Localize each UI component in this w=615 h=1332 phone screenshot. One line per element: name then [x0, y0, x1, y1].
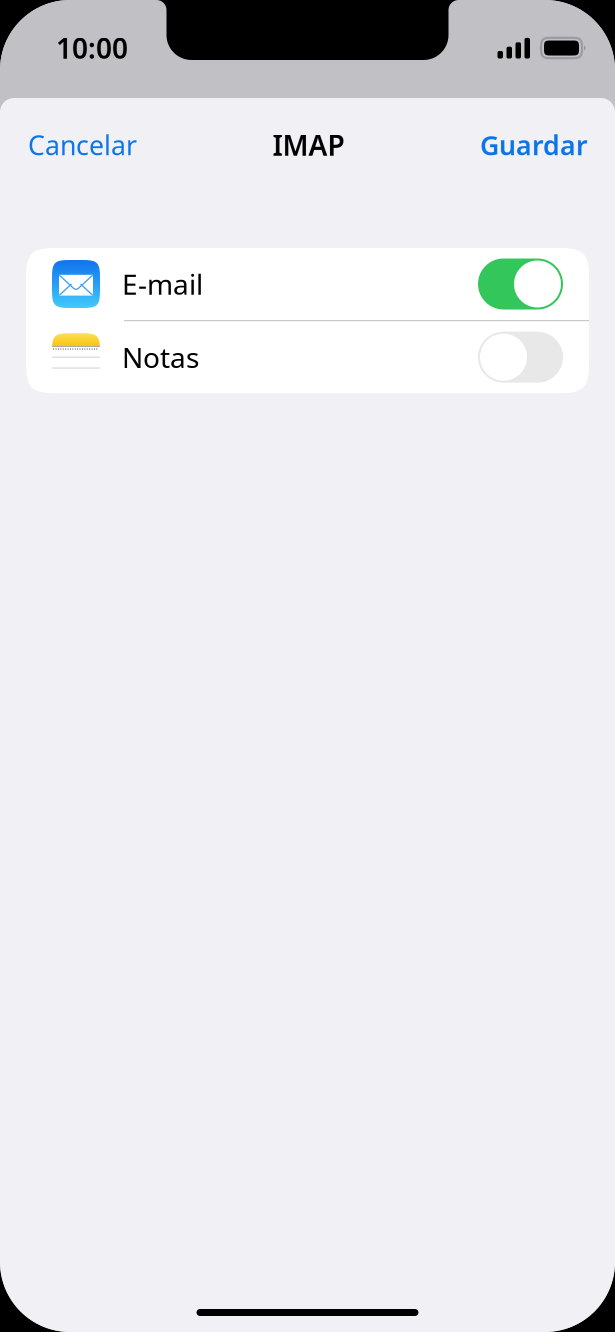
- button[interactable]: Cancelar: [28, 127, 137, 163]
- staticText: 10:00: [56, 29, 128, 67]
- button[interactable]: E-mail: [26, 248, 589, 320]
- button[interactable]: Notas: [26, 321, 589, 393]
- staticText: E-mail: [122, 265, 203, 303]
- staticText: IMAP: [272, 126, 344, 164]
- staticText: Cancelar: [28, 127, 137, 163]
- staticText: Notas: [122, 339, 199, 376]
- staticText: Guardar: [480, 127, 588, 163]
- button[interactable]: Guardar: [480, 127, 588, 163]
